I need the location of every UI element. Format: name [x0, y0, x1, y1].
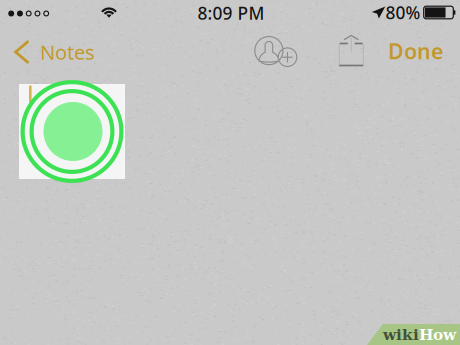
button[interactable]: Add People	[248, 30, 304, 72]
button[interactable]: Share	[327, 29, 375, 71]
staticText: wiki	[383, 325, 419, 343]
button[interactable]: Done	[379, 30, 451, 72]
staticText: 8:09 PM	[197, 1, 264, 24]
staticText: 80%	[385, 1, 420, 24]
button[interactable]: Notes	[0, 30, 110, 74]
staticText: Notes	[40, 39, 95, 65]
staticText: Done	[388, 37, 443, 65]
staticText: How	[419, 325, 456, 343]
